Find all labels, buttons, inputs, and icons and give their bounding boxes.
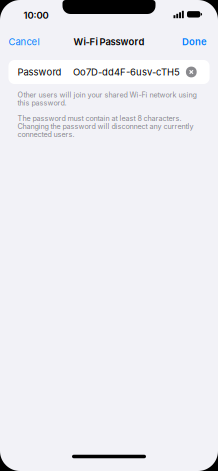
staticText: Oo7D-dd4F-6usv-cTH5: [73, 66, 180, 78]
staticText: Done: [182, 36, 207, 47]
staticText: The password must contain at least 8 cha…: [17, 114, 193, 139]
button[interactable]: Done: [182, 36, 207, 47]
staticText: Cancel: [8, 36, 39, 47]
button[interactable]: Clear text: [186, 67, 197, 77]
button[interactable]: Password: [8, 60, 209, 84]
staticText: 10:00: [23, 9, 48, 21]
staticText: Wi-Fi Password: [73, 36, 144, 47]
button[interactable]: Cancel: [8, 36, 39, 47]
staticText: Password: [17, 66, 61, 78]
staticText: Other users will join your shared Wi-Fi …: [17, 90, 196, 107]
